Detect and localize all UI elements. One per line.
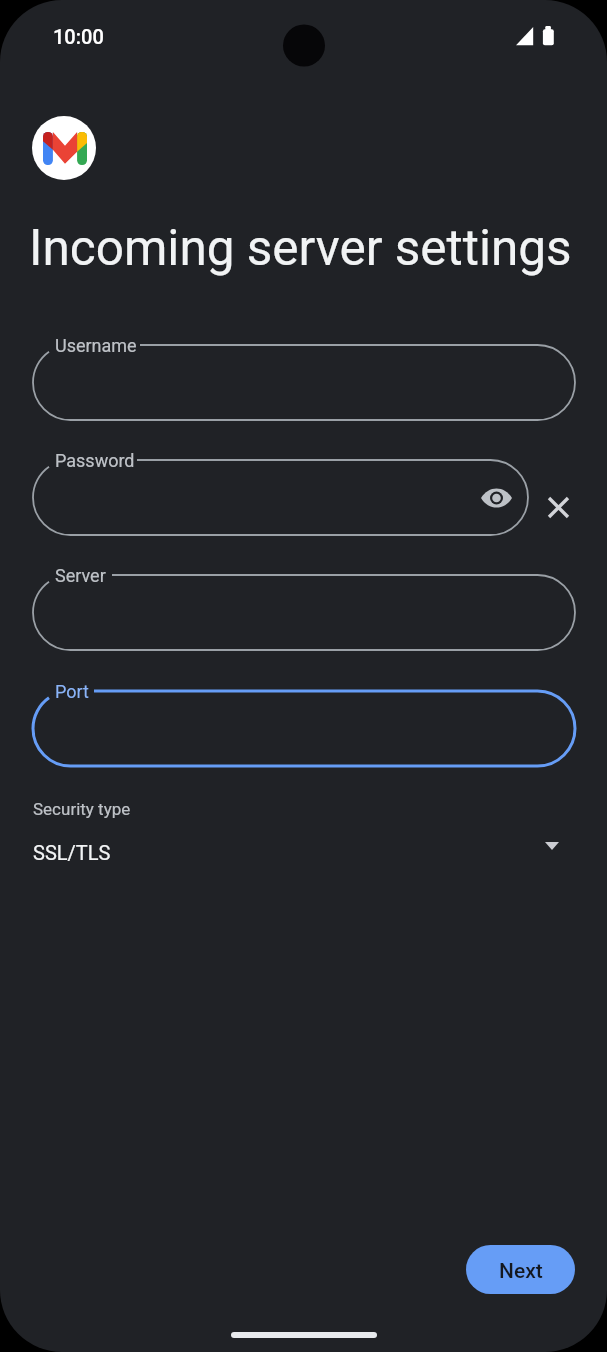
staticText: 10:00	[53, 25, 104, 48]
button[interactable]: Gmail	[32, 116, 96, 180]
button[interactable]: Password	[33, 440, 528, 535]
staticText: Security type	[33, 799, 131, 819]
button[interactable]: Clear	[534, 483, 582, 531]
staticText: Port	[55, 681, 89, 702]
staticText: SSL/TLS	[33, 841, 111, 864]
staticText: Password	[55, 450, 135, 471]
staticText: Server	[55, 565, 106, 586]
staticText: Incoming server settings	[29, 219, 572, 277]
button[interactable]: Port	[33, 671, 575, 766]
button[interactable]: Show password	[473, 475, 519, 521]
staticText: Next	[499, 1259, 543, 1284]
button[interactable]: SSL/TLS	[0, 831, 607, 875]
button[interactable]: Next	[466, 1245, 575, 1294]
staticText: Username	[55, 335, 137, 356]
button[interactable]: Username	[33, 325, 575, 420]
button[interactable]: Server	[33, 555, 575, 650]
